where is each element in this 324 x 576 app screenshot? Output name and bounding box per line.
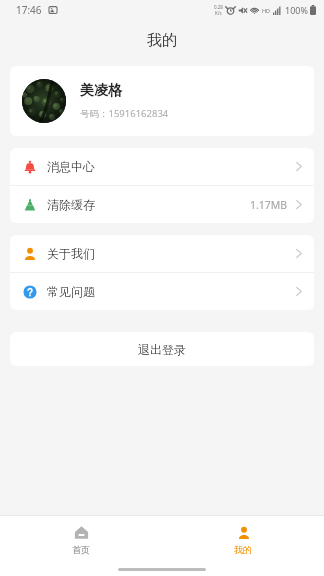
staticText: 首页 (72, 544, 90, 555)
button[interactable]: 首页 (0, 516, 162, 562)
button[interactable]: 我的 (162, 516, 324, 562)
staticText: 消息中心 (47, 159, 95, 174)
staticText: 17:46 (16, 3, 42, 17)
staticText: 100% (285, 4, 308, 16)
staticText: 我的 (234, 544, 252, 555)
staticText: 关于我们 (47, 246, 95, 261)
staticText: 1.17MB (250, 198, 288, 212)
button[interactable]: 关于我们 (10, 235, 314, 272)
staticText: K/s (215, 10, 222, 16)
staticText: 我的 (147, 31, 177, 50)
staticText: 号码：15916162834 (80, 107, 169, 120)
staticText: 退出登录 (138, 342, 186, 357)
button[interactable]: 清除缓存 (10, 186, 314, 223)
button[interactable]: 消息中心 (10, 148, 314, 185)
button[interactable]: 退出登录 (10, 332, 314, 366)
staticText: 清除缓存 (47, 197, 95, 212)
staticText: 美凌格 (80, 82, 122, 100)
staticText: HD (262, 7, 271, 14)
button[interactable]: 美凌格 (10, 66, 314, 136)
staticText: 常见问题 (47, 284, 95, 299)
button[interactable]: 常见问题 (10, 273, 314, 310)
staticText: 0.28 (214, 4, 223, 10)
